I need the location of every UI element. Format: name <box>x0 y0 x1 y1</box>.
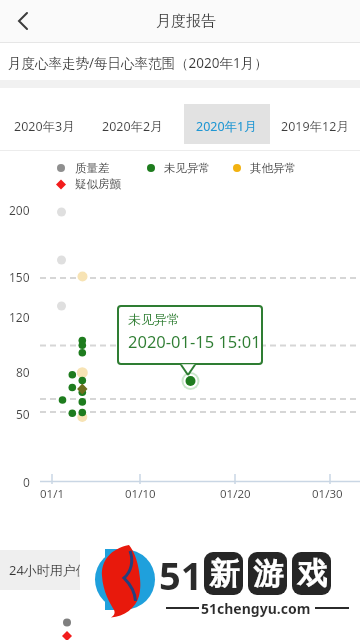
staticText: 2019年12月 <box>281 118 349 135</box>
staticText: 新 <box>209 555 239 593</box>
button[interactable]: 2020年2月 <box>96 115 168 137</box>
staticText: 其他异常 <box>250 161 296 175</box>
staticText: 质量差 <box>75 161 110 175</box>
staticText: 01/20 <box>220 486 251 502</box>
staticText: 50 <box>16 406 30 422</box>
staticText: 01/1 <box>40 486 65 502</box>
button[interactable]: 未见异常 <box>117 305 263 365</box>
button[interactable] <box>184 104 270 144</box>
staticText: 200 <box>9 202 30 218</box>
staticText: 120 <box>9 309 30 325</box>
staticText: 2020年1月 <box>196 118 257 135</box>
staticText: 01/10 <box>125 486 156 502</box>
staticText: 01/30 <box>312 486 343 502</box>
staticText: 未见异常 <box>128 311 180 327</box>
button[interactable]: 2019年12月 <box>275 115 355 137</box>
staticText: 月度心率走势/每日心率范围（2020年1月） <box>8 54 268 72</box>
button[interactable] <box>6 4 42 38</box>
staticText: 80 <box>16 364 30 380</box>
staticText: 51 <box>159 549 203 601</box>
button[interactable]: 2020年1月 <box>190 115 262 137</box>
staticText: 2020-01-15 15:01 <box>128 330 261 352</box>
staticText: 2020年2月 <box>102 118 163 135</box>
staticText: 0 <box>23 474 30 490</box>
button[interactable]: 2020年3月 <box>8 115 80 137</box>
staticText: 150 <box>9 269 30 285</box>
staticText: 游 <box>253 555 283 593</box>
staticText: 月度报告 <box>156 12 216 31</box>
staticText: 2020年3月 <box>14 118 75 135</box>
staticText: 疑似房颤 <box>75 177 121 191</box>
staticText: 51chengyu.com <box>201 599 311 618</box>
staticText: 24小时用户使用情况 <box>9 561 128 579</box>
staticText: 未见异常 <box>164 161 210 175</box>
staticText: 戏 <box>297 555 327 593</box>
